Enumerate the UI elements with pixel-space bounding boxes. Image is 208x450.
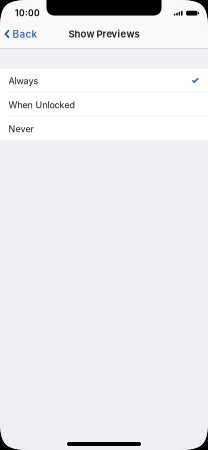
staticText: Never — [8, 124, 33, 134]
staticText: When Unlocked — [8, 99, 74, 110]
button[interactable]: Never — [0, 116, 208, 140]
staticText: Back — [12, 28, 37, 40]
staticText: Always — [8, 75, 38, 86]
button[interactable]: Back — [0, 23, 43, 45]
staticText: 10:00 — [15, 8, 40, 18]
staticText: Show Previews — [68, 28, 139, 40]
button[interactable]: When Unlocked — [0, 92, 208, 116]
button[interactable]: Always — [0, 68, 208, 92]
